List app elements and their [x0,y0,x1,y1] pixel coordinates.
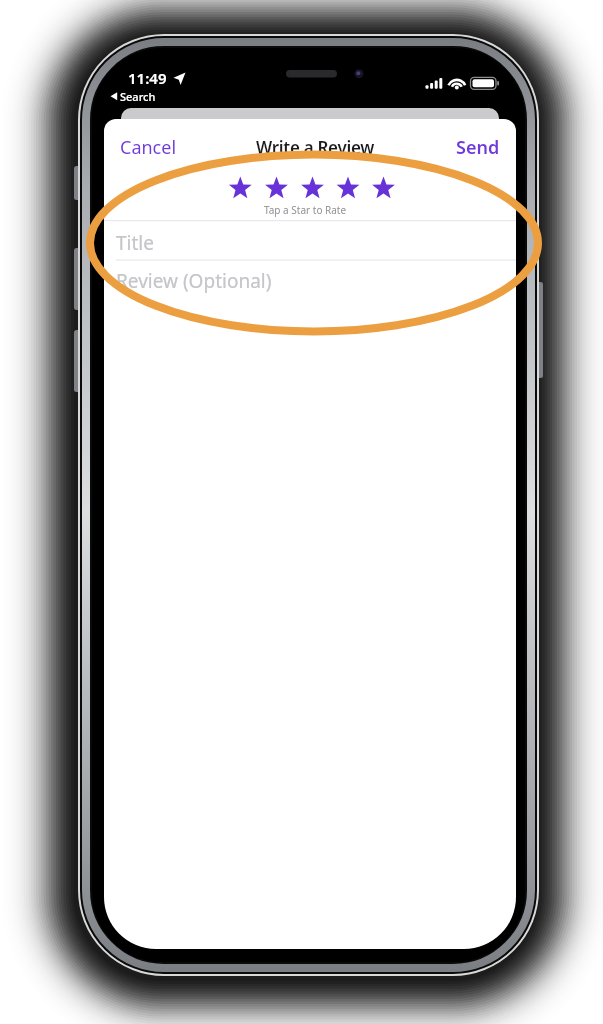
staticText: Send [456,135,500,160]
staticText: Review (Optional) [116,268,272,294]
staticText: 11:49 [128,68,167,88]
staticText: Cancel [120,135,177,160]
staticText: Tap a Star to Rate [264,203,347,217]
button[interactable]: Title [104,222,516,259]
staticText: Title [116,230,154,256]
staticText: Search [120,89,156,104]
button[interactable] [228,176,396,202]
button[interactable]: Review (Optional) [104,261,516,301]
button[interactable]: Cancel [120,135,177,160]
button[interactable]: Send [456,135,500,160]
staticText: Write a Review [256,136,375,159]
